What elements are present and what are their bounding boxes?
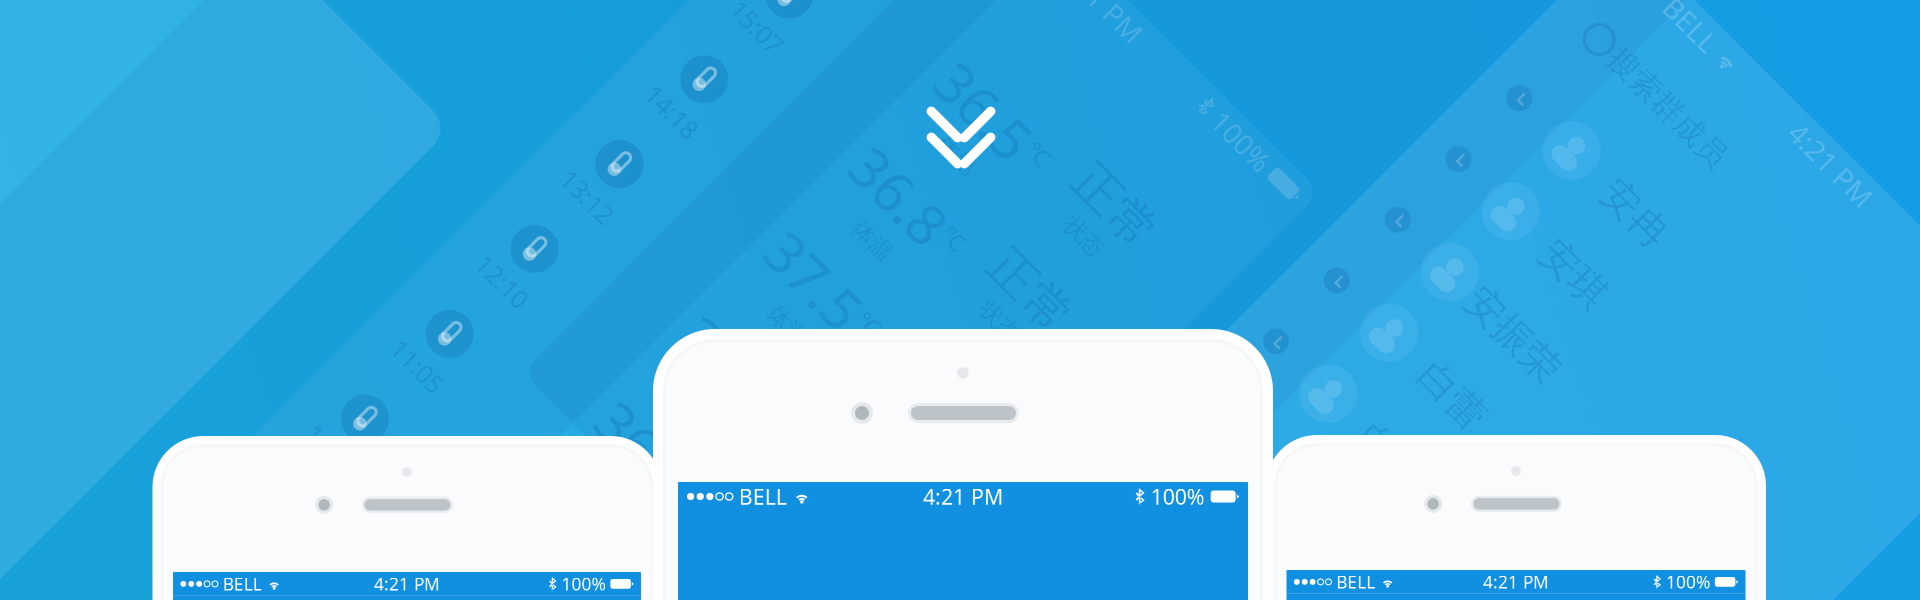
staticText: 正常 (868, 0, 964, 25)
staticText: 36.8 (701, 103, 812, 177)
staticText: 状态 (893, 385, 939, 412)
staticText: 100% (1151, 482, 1205, 511)
staticText: 36.5 (701, 0, 812, 57)
staticText: 正常 (868, 86, 964, 145)
staticText: ℃ (814, 476, 838, 508)
staticText: 100% (561, 572, 605, 595)
staticText: 白蕾 (1348, 431, 1426, 479)
staticText: BELL (223, 572, 262, 595)
staticText: BELL (1336, 570, 1375, 593)
staticText: 100% (1666, 570, 1710, 593)
staticText: 正常 (868, 326, 964, 385)
staticText: 4:21 PM (923, 482, 1003, 511)
staticText: BELL (739, 482, 787, 511)
staticText: 正常 (868, 206, 964, 265)
staticText: 状态 (893, 145, 939, 172)
staticText: 14:18 (505, 225, 568, 258)
staticText: ℃ (814, 236, 838, 268)
staticText: 37.5 (701, 223, 812, 297)
staticText: 15:07 (505, 105, 568, 138)
staticText: 4:21 PM (1438, 5, 1543, 43)
staticText: 13:12 (505, 345, 568, 378)
staticText: 安冉 (1348, 173, 1426, 221)
staticText: 4:21 PM (374, 572, 440, 595)
staticText: 100% (1673, 5, 1744, 43)
staticText: 体温 (746, 297, 792, 325)
staticText: 安琪 (1348, 259, 1426, 307)
staticText: 4:21 PM (1483, 570, 1549, 593)
staticText: 11:05 (505, 585, 568, 600)
staticText: 安振荣 (1328, 345, 1445, 393)
staticText: 36.6 (701, 463, 812, 537)
staticText: 正常 (868, 446, 964, 505)
